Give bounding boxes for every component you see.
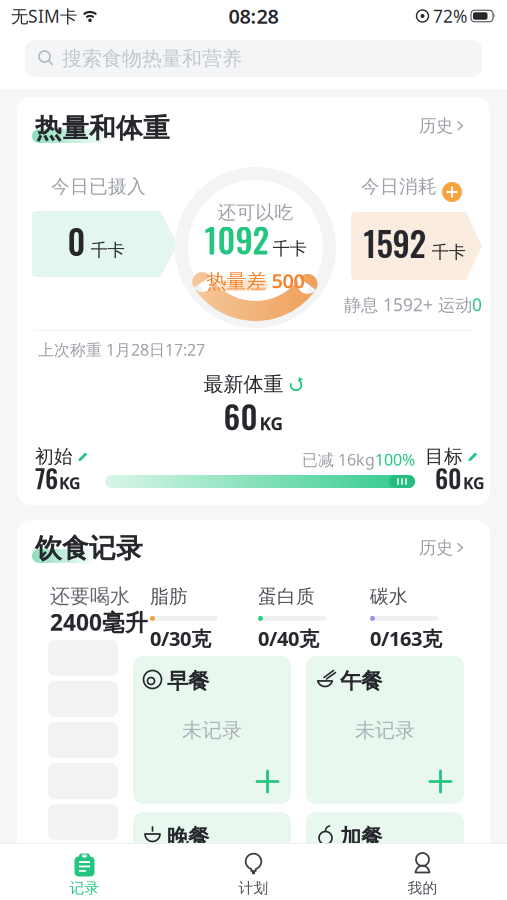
staticText: 热量和体重: [35, 112, 170, 145]
staticText: 计划: [238, 879, 268, 897]
staticText: 静息 1592+ 运动: [344, 293, 472, 316]
button[interactable]: 同步体重: [288, 377, 303, 392]
staticText: 上次称重 1月28日17:27: [38, 339, 205, 360]
staticText: 记录: [69, 879, 99, 897]
button[interactable]: 记录: [0, 852, 169, 897]
staticText: 未记录: [182, 874, 242, 899]
staticText: 100%: [375, 449, 415, 470]
button[interactable]: 早餐: [133, 656, 291, 804]
staticText: 千卡: [90, 240, 124, 261]
button[interactable]: 喝水打卡 6: [48, 845, 118, 881]
staticText: 1092: [204, 215, 269, 264]
staticText: 未记录: [355, 718, 415, 743]
staticText: 0: [67, 216, 85, 266]
staticText: 晚餐: [167, 824, 209, 850]
staticText: 0: [472, 293, 482, 316]
staticText: 2400毫升: [50, 607, 148, 637]
staticText: 未记录: [182, 718, 242, 743]
staticText: 蛋白质: [258, 585, 315, 608]
button[interactable]: 添加运动消耗: [442, 182, 462, 202]
button[interactable]: 我的: [338, 852, 507, 897]
staticText: 08:28: [228, 3, 278, 29]
staticText: KG: [59, 472, 81, 494]
staticText: 最新体重: [203, 372, 283, 397]
staticText: 饮食记录: [35, 532, 143, 565]
staticText: 还要喝水: [50, 584, 130, 609]
button[interactable]: 搜索食物热量和营养: [25, 40, 482, 77]
button[interactable]: 初始: [35, 445, 89, 468]
staticText: 脂肪: [150, 585, 188, 608]
staticText: 未记录: [355, 874, 415, 899]
button[interactable]: 计划: [169, 852, 338, 897]
staticText: 0/30克: [150, 625, 211, 651]
staticText: 千卡: [431, 242, 465, 263]
staticText: 72%: [433, 4, 467, 27]
button[interactable]: 加餐: [306, 812, 464, 900]
staticText: 今日消耗: [361, 175, 437, 198]
staticText: 历史: [419, 115, 453, 136]
button[interactable]: 晚餐: [133, 812, 291, 900]
staticText: 午餐: [340, 668, 382, 694]
staticText: 1592: [363, 218, 426, 268]
staticText: 初始: [35, 445, 73, 468]
staticText: 76: [35, 459, 58, 496]
button[interactable]: 午餐: [306, 656, 464, 804]
button[interactable]: 历史: [419, 115, 464, 136]
button[interactable]: 目标: [425, 445, 479, 468]
staticText: 千卡: [272, 238, 306, 259]
staticText: 0/163克: [370, 625, 442, 651]
staticText: 已减 16kg: [302, 449, 375, 470]
staticText: 搜索食物热量和营养: [62, 46, 242, 71]
staticText: 目标: [425, 445, 463, 468]
staticText: 热量差 500: [206, 267, 304, 294]
staticText: 加餐: [340, 824, 382, 850]
staticText: 还可以吃: [217, 201, 293, 224]
staticText: 0/40克: [258, 625, 319, 651]
staticText: 60: [223, 392, 257, 439]
staticText: 早餐: [167, 668, 209, 694]
button[interactable]: 历史: [419, 537, 464, 558]
staticText: KG: [463, 472, 485, 494]
staticText: 无SIM卡: [11, 4, 77, 27]
staticText: 我的: [407, 879, 437, 897]
staticText: 历史: [419, 537, 453, 558]
staticText: KG: [259, 412, 283, 435]
staticText: 今日已摄入: [51, 175, 146, 198]
staticText: 碳水: [370, 585, 408, 608]
staticText: 60: [435, 459, 462, 496]
